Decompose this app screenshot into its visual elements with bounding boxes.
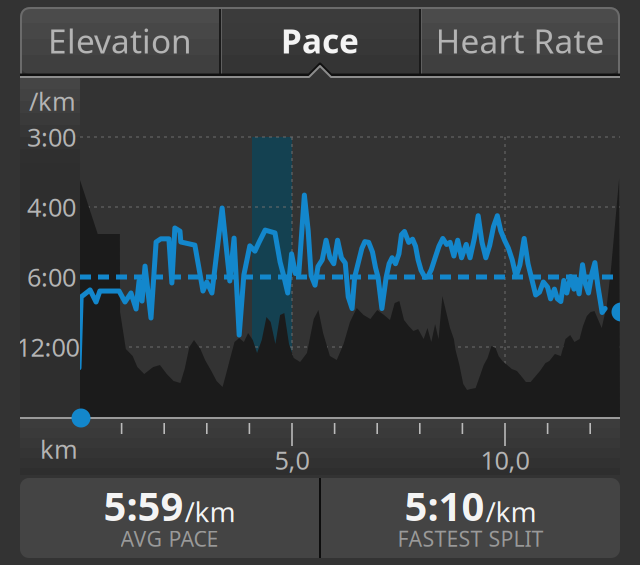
staticText: AVG PACE [120, 524, 218, 553]
staticText: 5:10 [404, 479, 484, 532]
staticText: 3:00 [27, 120, 76, 154]
staticText: 5:59 [103, 479, 183, 532]
staticText: 4:00 [27, 190, 76, 224]
staticText: km [40, 432, 78, 466]
staticText: 5,0 [274, 443, 309, 477]
staticText: /km [29, 84, 76, 118]
staticText: Heart Rate [435, 18, 604, 63]
staticText: 10,0 [480, 443, 529, 477]
staticText: Elevation [48, 18, 192, 63]
button[interactable]: Elevation [20, 7, 220, 74]
staticText: /km [485, 493, 536, 530]
staticText: /km [184, 493, 235, 530]
staticText: 6:00 [27, 260, 76, 294]
staticText: 12:00 [16, 330, 79, 364]
staticText: FASTEST SPLIT [397, 524, 543, 553]
button[interactable]: Heart Rate [420, 7, 620, 74]
button[interactable]: 5:59 [20, 478, 319, 558]
button[interactable]: Pace [220, 7, 420, 74]
staticText: Pace [281, 18, 359, 63]
button[interactable]: 5:10 [321, 478, 620, 558]
